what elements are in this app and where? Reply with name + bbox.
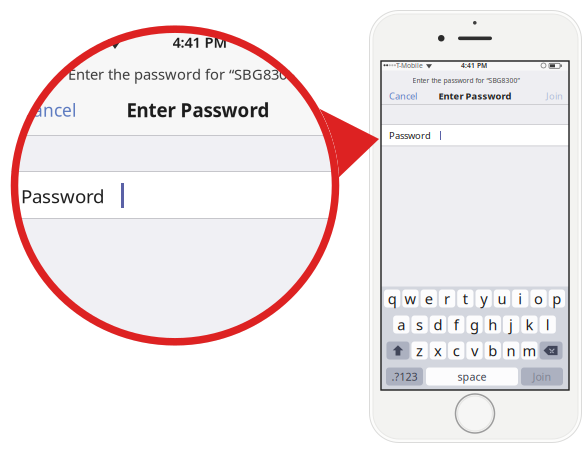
button[interactable]: d — [430, 315, 446, 333]
button[interactable]: Cancel — [0, 0, 420, 26]
staticText: .?123 — [391, 369, 417, 384]
staticText: Enter Password — [126, 98, 269, 122]
staticText: 4:41 PM — [172, 32, 227, 52]
staticText: Enter the password for “SBG8300” — [68, 64, 300, 84]
staticText: t — [463, 289, 468, 308]
button[interactable]: j — [503, 315, 519, 333]
staticText: Join — [532, 369, 551, 384]
button[interactable]: s — [411, 315, 428, 333]
staticText: f — [454, 315, 459, 334]
staticText: z — [416, 341, 423, 360]
staticText: q — [388, 289, 397, 308]
staticText: a — [397, 315, 405, 334]
staticText: 4:41 PM — [461, 61, 487, 70]
button[interactable]: p — [549, 289, 565, 307]
button[interactable]: y — [475, 289, 492, 307]
staticText: c — [453, 341, 460, 360]
staticText: k — [525, 315, 533, 334]
button[interactable]: x — [430, 341, 446, 359]
staticText: i — [518, 289, 522, 308]
button[interactable]: o — [530, 289, 547, 307]
button[interactable]: f — [448, 315, 464, 333]
button[interactable]: q — [384, 289, 400, 307]
staticText: Join — [546, 90, 563, 102]
staticText: Cancel — [22, 98, 76, 121]
staticText: Password — [21, 184, 104, 208]
button[interactable]: Delete — [540, 341, 563, 359]
staticText: x — [434, 341, 442, 360]
staticText: u — [497, 289, 506, 308]
staticText: l — [546, 315, 550, 334]
staticText: v — [471, 341, 478, 360]
button[interactable]: .?123 — [386, 367, 423, 385]
button[interactable]: Cancel — [381, 61, 441, 75]
staticText: p — [552, 289, 561, 308]
button[interactable]: k — [521, 315, 537, 333]
button[interactable]: Shift — [386, 341, 409, 359]
staticText: d — [433, 315, 442, 334]
button[interactable]: h — [485, 315, 501, 333]
button[interactable]: n — [503, 341, 519, 359]
staticText: y — [480, 289, 487, 308]
button[interactable]: w — [402, 289, 419, 307]
staticText: Password — [389, 129, 431, 142]
button[interactable]: l — [539, 315, 556, 333]
button[interactable]: m — [521, 341, 537, 359]
button[interactable]: Join — [381, 61, 421, 75]
staticText: T-Mobile — [396, 61, 423, 70]
button[interactable]: z — [411, 341, 428, 359]
button[interactable]: t — [457, 289, 473, 307]
staticText: n — [507, 341, 516, 360]
button[interactable]: c — [448, 341, 464, 359]
button[interactable]: i — [512, 289, 528, 307]
button[interactable]: b — [485, 341, 501, 359]
staticText: j — [509, 315, 513, 334]
staticText: space — [457, 369, 486, 384]
button[interactable]: a — [393, 315, 409, 333]
button[interactable]: u — [494, 289, 510, 307]
staticText: Enter Password — [438, 90, 511, 102]
button[interactable]: r — [439, 289, 455, 307]
staticText: Enter the password for “SBG8300” — [412, 76, 519, 85]
button[interactable]: e — [421, 289, 437, 307]
button[interactable]: Join — [521, 367, 563, 385]
staticText: g — [470, 315, 479, 334]
button[interactable]: g — [466, 315, 483, 333]
staticText: e — [425, 289, 433, 308]
staticText: b — [488, 341, 497, 360]
staticText: m — [522, 341, 536, 360]
staticText: Cancel — [389, 90, 417, 102]
staticText: s — [416, 315, 423, 334]
staticText: w — [404, 289, 416, 308]
staticText: o — [534, 289, 543, 308]
staticText: h — [488, 315, 497, 334]
button[interactable]: v — [466, 341, 483, 359]
button[interactable]: space — [426, 367, 518, 385]
staticText: r — [444, 289, 450, 308]
